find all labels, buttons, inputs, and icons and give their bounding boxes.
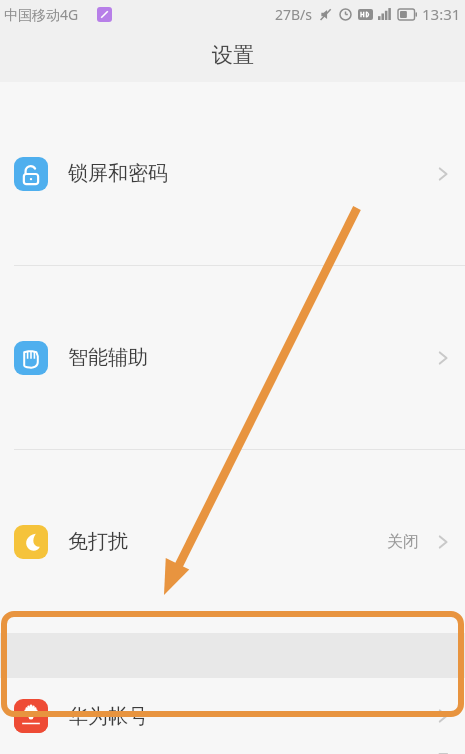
staticText: 关闭 bbox=[387, 532, 419, 552]
button[interactable]: 锁屏和密码 bbox=[0, 82, 465, 265]
staticText: 13:31 bbox=[422, 4, 461, 24]
staticText: 免打扰 bbox=[68, 529, 387, 554]
button[interactable]: 华为帐号 bbox=[0, 678, 465, 754]
staticText: 智能辅助 bbox=[68, 345, 435, 370]
button[interactable]: 免打扰 bbox=[0, 450, 465, 633]
staticText: 27B/s bbox=[275, 5, 313, 24]
staticText: 中国移动4G bbox=[4, 5, 79, 24]
staticText: 设置 bbox=[212, 42, 254, 68]
staticText: 华为帐号 bbox=[68, 704, 435, 729]
staticText: 锁屏和密码 bbox=[68, 161, 435, 186]
button[interactable]: 智能辅助 bbox=[0, 266, 465, 449]
